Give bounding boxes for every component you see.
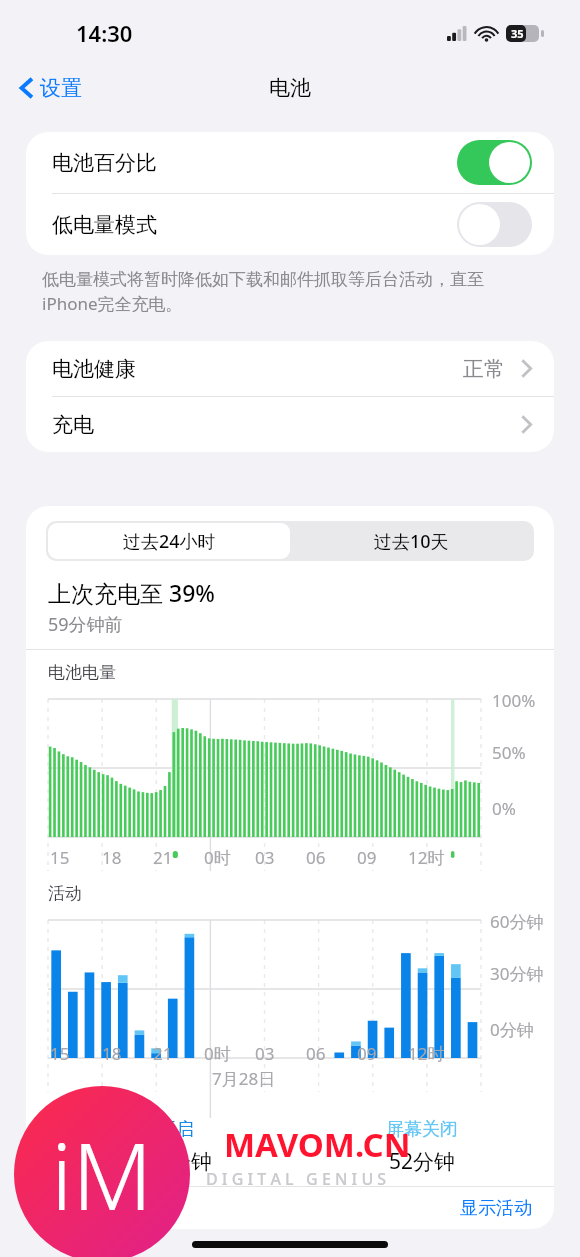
staticText: 显示活动 <box>460 1197 532 1220</box>
staticText: 52分钟 <box>389 1147 456 1176</box>
staticText: 03 <box>255 1042 275 1065</box>
button[interactable]: 设置 <box>14 71 88 105</box>
staticText: 过去24小时 <box>123 529 216 554</box>
button[interactable]: 过去24小时 <box>48 523 290 559</box>
staticText: 15 <box>50 846 70 869</box>
staticText: 低电量模式将暂时降低如下载和邮件抓取等后台活动，直至 iPhone完全充电。 <box>42 269 484 315</box>
button[interactable]: 过去10天 <box>290 523 532 559</box>
button[interactable]: 电池百分比 <box>26 132 554 193</box>
staticText: 06 <box>306 846 326 869</box>
staticText: 60分钟 <box>490 910 544 933</box>
staticText: 09 <box>357 846 377 869</box>
staticText: 5小时6分钟 <box>104 1147 213 1176</box>
staticText: 18 <box>102 1042 122 1065</box>
staticText: 7月28日 <box>212 1067 276 1090</box>
staticText: 30分钟 <box>490 962 544 985</box>
staticText: 屏幕关闭 <box>386 1118 458 1141</box>
staticText: 35 <box>511 26 524 41</box>
staticText: 09 <box>357 1042 377 1065</box>
staticText: 21 <box>153 1042 173 1065</box>
staticText: 电池 <box>269 75 311 101</box>
button[interactable]: 低电量模式 <box>26 194 554 255</box>
staticText: 低电量模式 <box>52 212 157 238</box>
staticText: 活动 <box>48 883 82 904</box>
staticText: 充电 <box>52 412 94 438</box>
staticText: 18 <box>102 846 122 869</box>
staticText: 设置 <box>40 75 82 101</box>
staticText: 06 <box>306 1042 326 1065</box>
staticText: 0时 <box>204 846 231 869</box>
staticText: 12时 <box>408 846 445 869</box>
staticText: 0时 <box>204 1042 231 1065</box>
staticText: 上次充电至 39% <box>48 577 215 608</box>
staticText: 0分钟 <box>490 1018 534 1041</box>
staticText: 12时 <box>408 1042 445 1065</box>
button[interactable] <box>457 202 532 247</box>
button[interactable]: 充电 <box>26 397 554 452</box>
staticText: 03 <box>255 846 275 869</box>
staticText: App的电池用量 <box>48 1196 172 1221</box>
staticText: iM <box>51 1112 153 1237</box>
staticText: D I G I T A L G E N I U S <box>206 1168 387 1190</box>
staticText: 0% <box>492 797 516 820</box>
staticText: 59分钟前 <box>48 612 123 637</box>
staticText: 15 <box>50 1042 70 1065</box>
staticText: MAVOM.CN <box>224 1122 411 1167</box>
staticText: 电池百分比 <box>52 150 157 176</box>
button[interactable]: 电池健康 <box>26 341 554 396</box>
staticText: 屏幕开启 <box>122 1118 194 1141</box>
button[interactable] <box>457 140 532 185</box>
staticText: 过去10天 <box>374 529 449 554</box>
staticText: 正常 <box>463 356 505 382</box>
staticText: 100% <box>492 689 536 712</box>
staticText: 14:30 <box>76 18 133 48</box>
staticText: 电池健康 <box>52 356 136 382</box>
staticText: 电池电量 <box>48 662 116 683</box>
staticText: 50% <box>492 741 526 764</box>
button[interactable]: 显示活动 <box>460 1197 532 1220</box>
staticText: 21 <box>153 846 173 869</box>
